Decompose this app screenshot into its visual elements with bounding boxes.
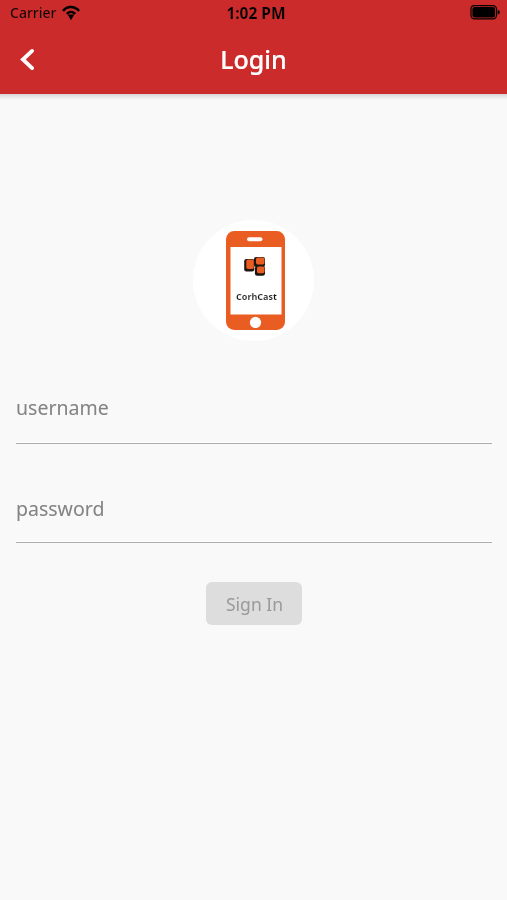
staticText: CorhCast: [236, 290, 277, 302]
staticText: Carrier: [10, 3, 57, 22]
button[interactable]: Back: [3, 35, 51, 83]
staticText: username: [16, 394, 109, 421]
staticText: Sign In: [226, 592, 283, 616]
staticText: Login: [220, 42, 287, 76]
button[interactable]: [16, 487, 492, 545]
staticText: password: [16, 495, 105, 522]
button[interactable]: [16, 386, 492, 444]
button[interactable]: Sign In: [206, 582, 302, 625]
staticText: 1:02 PM: [226, 2, 286, 23]
